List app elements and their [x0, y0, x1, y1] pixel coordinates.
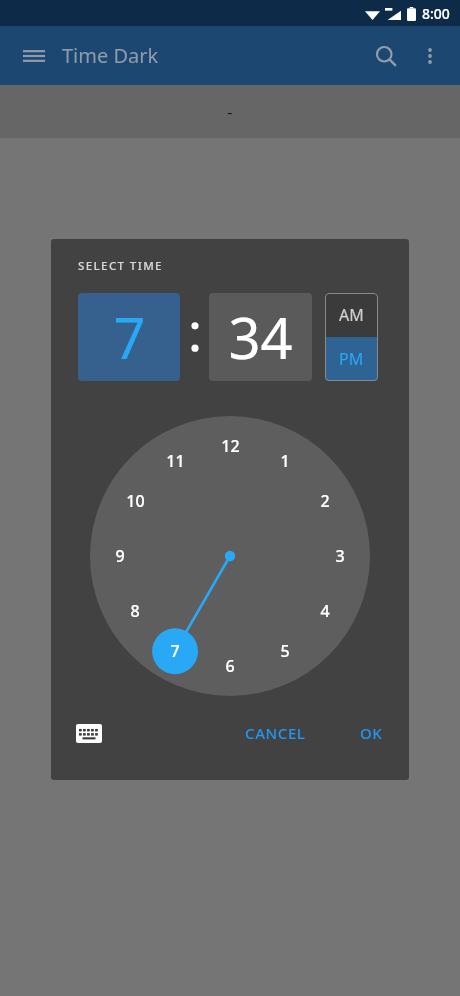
- button[interactable]: 7: [78, 293, 180, 381]
- staticText: PM: [339, 348, 364, 370]
- staticText: AM: [339, 304, 364, 326]
- staticText: 9: [115, 545, 125, 567]
- staticText: 3: [335, 545, 345, 567]
- button[interactable]: Switch to text input mode: [69, 713, 109, 753]
- staticText: 8:00: [422, 4, 450, 23]
- staticText: 5: [280, 640, 290, 662]
- staticText: CANCEL: [245, 723, 306, 743]
- staticText: 11: [166, 450, 185, 472]
- staticText: Time Dark: [62, 42, 159, 69]
- staticText: 7: [113, 299, 146, 375]
- button[interactable]: PM: [325, 337, 378, 381]
- button[interactable]: CANCEL: [233, 714, 318, 752]
- button[interactable]: Search: [364, 34, 408, 78]
- button[interactable]: More options: [408, 34, 452, 78]
- staticText: OK: [360, 723, 383, 743]
- staticText: 34: [228, 299, 293, 375]
- button[interactable]: AM: [325, 293, 378, 337]
- button[interactable]: 34: [209, 293, 312, 381]
- button[interactable]: OK: [348, 714, 395, 752]
- staticText: -: [227, 100, 233, 123]
- button[interactable]: Open navigation menu: [14, 36, 54, 76]
- staticText: 6: [225, 655, 235, 677]
- staticText: 10: [126, 490, 145, 512]
- staticText: 8: [130, 600, 140, 622]
- staticText: SELECT TIME: [78, 258, 163, 274]
- staticText: 2: [320, 490, 330, 512]
- staticText: 1: [280, 450, 290, 472]
- staticText: 4: [320, 600, 330, 622]
- staticText: 7: [170, 640, 180, 662]
- staticText: 12: [221, 435, 240, 457]
